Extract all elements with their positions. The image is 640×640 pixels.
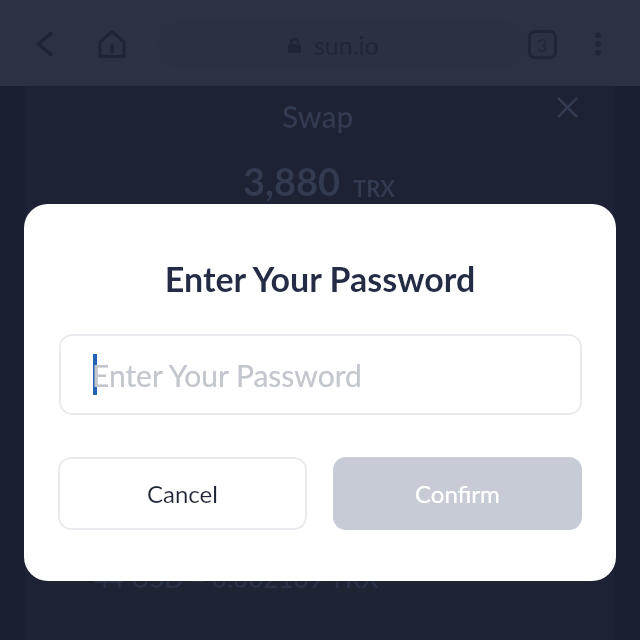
staticText: 3,880 <box>243 158 341 204</box>
staticText: Cancel <box>147 479 218 508</box>
staticText: Confirm <box>415 479 500 508</box>
staticText: Enter Your Password <box>92 357 362 393</box>
staticText: 3 <box>537 34 548 56</box>
staticText: sun.io <box>314 30 379 60</box>
button[interactable]: Home <box>90 22 134 66</box>
staticText: TRX <box>353 175 396 201</box>
staticText: Enter Your Password <box>24 258 616 299</box>
button[interactable]: Confirm <box>333 457 582 530</box>
button[interactable]: Close <box>545 85 589 129</box>
staticText: 44 USD = 0.002189 TRX <box>94 562 379 593</box>
button[interactable]: Tabs <box>520 22 564 66</box>
staticText: Swap <box>282 98 354 134</box>
button[interactable]: Back <box>22 22 66 66</box>
button[interactable]: Enter Your Password <box>59 334 582 415</box>
button[interactable]: Cancel <box>58 457 307 530</box>
